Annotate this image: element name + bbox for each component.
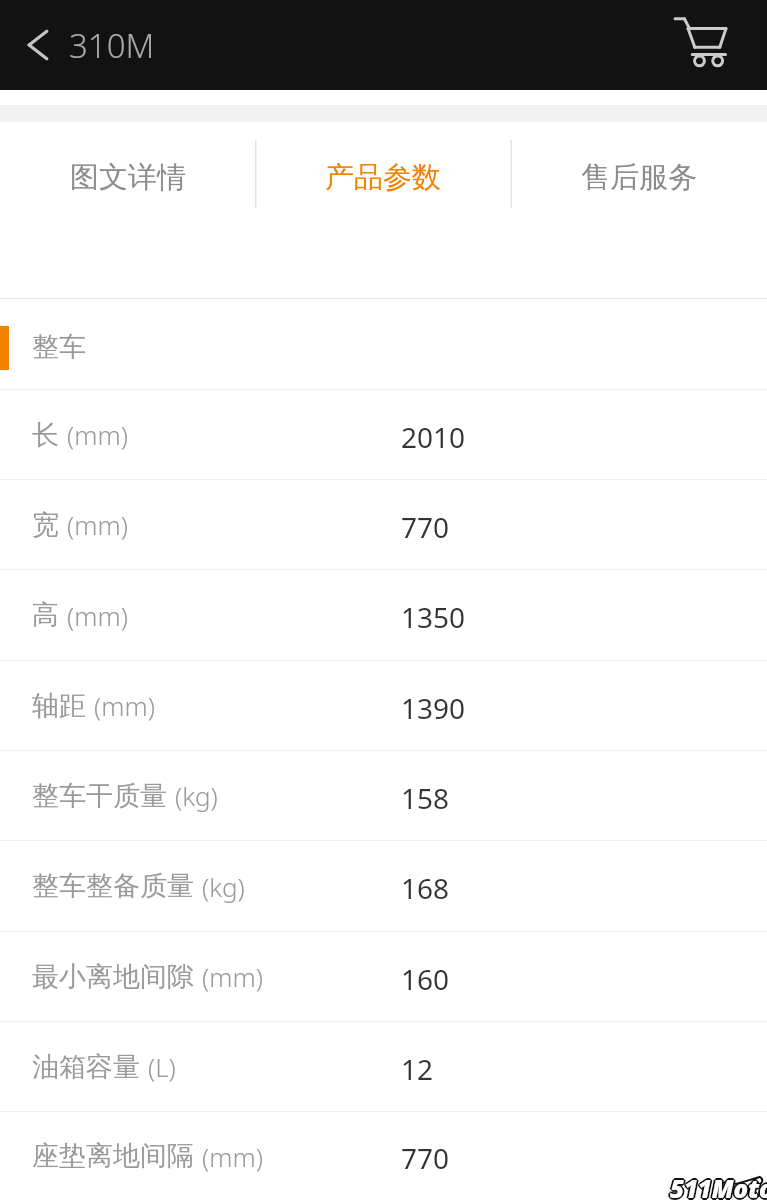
staticText: (L) (148, 1049, 176, 1084)
staticText: 12 (401, 1050, 434, 1088)
button[interactable]: 长 (0, 390, 767, 479)
staticText: 长 (32, 418, 59, 452)
staticText: 售后服务 (581, 159, 697, 196)
staticText: 最小离地间隙 (32, 960, 194, 994)
staticText: 产品参数 (325, 159, 441, 196)
button[interactable]: Cart (656, 1, 744, 89)
staticText: 轴距 (32, 689, 86, 723)
button[interactable]: 高 (0, 570, 767, 660)
button[interactable]: 轴距 (0, 661, 767, 750)
staticText: 整车 (32, 330, 86, 364)
staticText: (mm) (67, 507, 128, 542)
staticText: (mm) (202, 1139, 263, 1174)
button[interactable]: 最小离地间隙 (0, 932, 767, 1021)
staticText: 158 (401, 779, 450, 817)
button[interactable]: 售后服务 (511, 122, 767, 232)
staticText: 宽 (32, 508, 59, 542)
staticText: (mm) (202, 959, 263, 994)
staticText: 座垫离地间隔 (32, 1139, 194, 1173)
staticText: 770 (401, 1139, 450, 1177)
staticText: 1350 (401, 598, 466, 636)
staticText: (mm) (67, 598, 128, 633)
staticText: 168 (401, 869, 450, 907)
staticText: 770 (401, 508, 450, 546)
staticText: 油箱容量 (32, 1050, 140, 1084)
staticText: 310M (69, 23, 155, 68)
button[interactable]: 油箱容量 (0, 1022, 767, 1111)
staticText: 图文详情 (70, 159, 186, 196)
staticText: 整车整备质量 (32, 869, 194, 903)
button[interactable]: 产品参数 (255, 122, 511, 232)
staticText: 高 (32, 598, 59, 632)
button[interactable]: 图文详情 (0, 122, 255, 232)
staticText: (mm) (67, 417, 128, 452)
button[interactable]: 整车整备质量 (0, 841, 767, 931)
button[interactable]: 座垫离地间隔 (0, 1112, 767, 1200)
staticText: 160 (401, 960, 450, 998)
staticText: 整车干质量 (32, 779, 167, 813)
staticText: (kg) (175, 778, 218, 813)
button[interactable]: 宽 (0, 480, 767, 569)
staticText: 1390 (401, 689, 466, 727)
staticText: (mm) (94, 688, 155, 723)
button[interactable]: 整车干质量 (0, 751, 767, 840)
staticText: 2010 (401, 418, 466, 456)
staticText: (kg) (202, 869, 245, 904)
button[interactable]: Back (16, 22, 62, 68)
